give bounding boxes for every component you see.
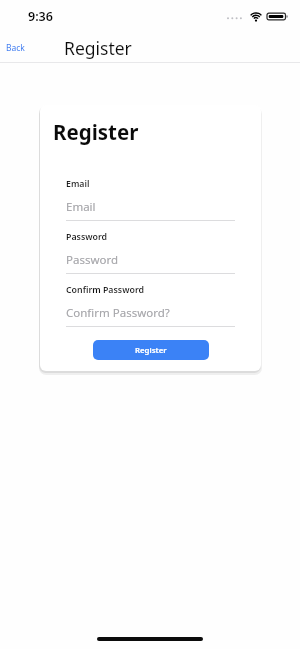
staticText: Email <box>66 199 96 215</box>
staticText: 9:36 <box>28 8 53 25</box>
button[interactable]: Email <box>66 178 235 221</box>
button[interactable]: Confirm Password <box>66 284 235 327</box>
staticText: Confirm Password? <box>66 305 170 321</box>
button[interactable]: Register <box>93 340 209 360</box>
staticText: Register <box>64 36 132 60</box>
staticText: Register <box>53 118 139 146</box>
staticText: Back <box>6 42 25 54</box>
staticText: Password <box>66 252 119 268</box>
staticText: Password <box>66 231 108 243</box>
staticText: Register <box>135 345 167 356</box>
button[interactable]: Back <box>0 38 33 58</box>
staticText: Confirm Password <box>66 284 145 296</box>
staticText: Email <box>66 178 90 190</box>
button[interactable]: Password <box>66 231 235 274</box>
